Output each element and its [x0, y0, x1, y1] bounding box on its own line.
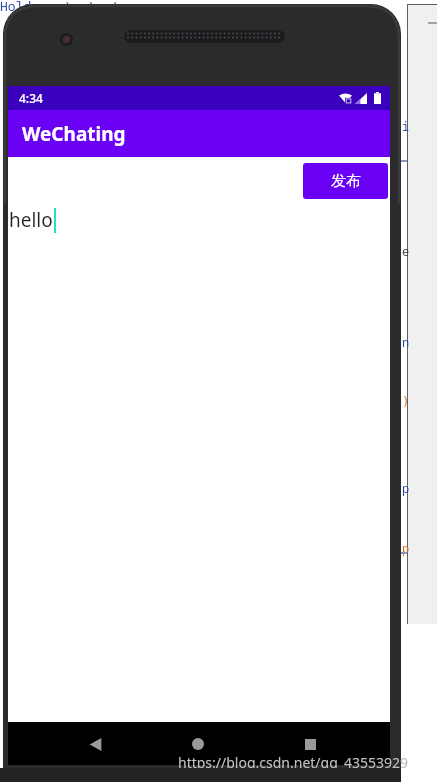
staticText: WeChating [22, 121, 126, 147]
staticText: Hold [0, 0, 32, 15]
staticText: p [402, 480, 410, 496]
staticText: e [402, 243, 410, 259]
button[interactable]: hello [9, 207, 390, 233]
button[interactable]: Back [80, 729, 110, 759]
button[interactable]: 发布 [303, 163, 388, 199]
staticText: https://blog.csdn.net/qq_43553929 [178, 753, 409, 772]
staticText: n [402, 334, 410, 350]
staticText: 发布 [331, 172, 361, 191]
staticText: ) [402, 392, 410, 408]
staticText: p [402, 540, 410, 556]
button[interactable]: Home [183, 729, 213, 759]
staticText: 4:34 [19, 90, 43, 106]
button[interactable]: Recent apps [295, 729, 325, 759]
staticText: ) ) ( [64, 0, 119, 15]
staticText: hello [9, 207, 53, 233]
staticText: i [402, 118, 410, 134]
